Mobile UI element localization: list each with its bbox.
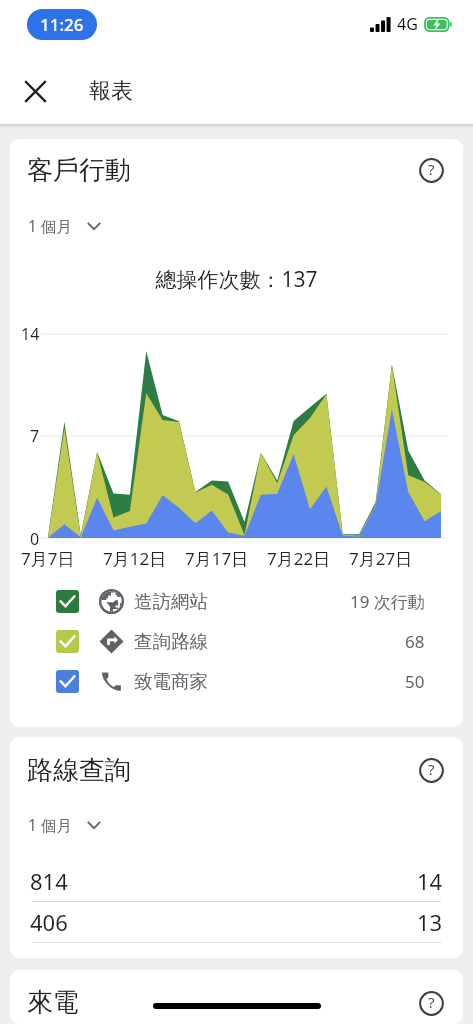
staticText: 406 [30, 907, 68, 937]
button[interactable]: 1 個月 [10, 809, 115, 840]
staticText: 致電商家 [134, 670, 208, 693]
staticText: 14 [21, 323, 40, 345]
staticText: 13 [417, 907, 443, 937]
staticText: 來電 [27, 986, 79, 1019]
staticText: 19 次行動 [350, 590, 425, 613]
staticText: ? [428, 759, 435, 779]
button[interactable]: Help [410, 749, 452, 791]
button[interactable]: Close [13, 69, 57, 113]
staticText: ? [428, 159, 435, 179]
button[interactable]: 造訪網站 [10, 581, 463, 621]
staticText: 客戶行動 [27, 154, 131, 187]
staticText: 50 [405, 670, 425, 693]
staticText: 11:26 [40, 13, 84, 36]
staticText: 68 [405, 630, 425, 653]
staticText: 查詢路線 [134, 630, 208, 653]
staticText: 7月12日 [103, 547, 167, 570]
button[interactable]: 查詢路線 [10, 621, 463, 661]
staticText: 1 個月 [28, 215, 72, 236]
staticText: 7月7日 [21, 547, 75, 570]
staticText: 7月27日 [349, 547, 413, 570]
staticText: 7月17日 [185, 547, 249, 570]
staticText: 總操作次數：137 [10, 265, 463, 294]
button[interactable]: 406 [10, 902, 463, 943]
staticText: 路線查詢 [27, 754, 131, 787]
staticText: 0 [30, 528, 40, 550]
button[interactable]: 致電商家 [10, 661, 463, 701]
staticText: 4G [397, 13, 418, 35]
button[interactable]: Help [410, 982, 452, 1024]
staticText: 造訪網站 [134, 590, 208, 613]
staticText: 1 個月 [28, 814, 72, 835]
staticText: 14 [417, 866, 443, 896]
staticText: 7月22日 [267, 547, 331, 570]
staticText: 814 [30, 866, 68, 896]
button[interactable]: Help [410, 149, 452, 191]
button[interactable]: 1 個月 [10, 210, 115, 241]
button[interactable]: 814 [10, 861, 463, 902]
staticText: ? [428, 992, 435, 1012]
staticText: 報表 [89, 77, 133, 105]
staticText: 7 [30, 425, 40, 447]
